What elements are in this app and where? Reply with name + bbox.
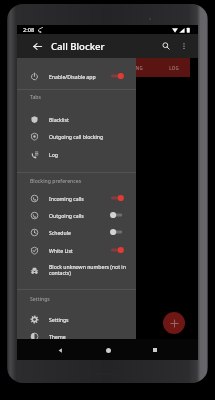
staticText: LOG [169,65,179,71]
button[interactable]: Recents [148,343,162,357]
staticText: White List [49,247,110,254]
button[interactable]: Home [101,343,115,357]
button[interactable]: More options [176,38,192,54]
button[interactable]: Settings [17,310,136,328]
button[interactable]: Back [53,343,67,357]
button[interactable]: Outgoing calls [17,206,136,224]
button[interactable]: OUTGOING [112,58,147,77]
staticText: Settings [49,316,130,323]
staticText: Tabs [30,94,42,101]
button[interactable]: Blacklist [17,110,136,128]
staticText: Blocking preferences [30,178,82,185]
button[interactable]: Block unknown numbers (not in contacts) [17,259,136,281]
button[interactable]: Incoming calls [17,189,136,207]
button[interactable]: BLACKLIST [22,58,72,77]
button[interactable]: LOG [157,58,190,77]
button[interactable]: Search [158,38,174,54]
button[interactable]: Add [163,312,185,334]
staticText: OUTGOING [117,65,143,71]
staticText: Enable/Disable app [49,73,110,80]
staticText: Schedule [49,229,110,236]
button[interactable]: White List [17,241,136,259]
staticText: Blacklist [49,116,130,123]
staticText: Outgoing calls [49,212,110,219]
button[interactable]: Log [17,145,136,163]
button[interactable]: Enable/Disable app [17,67,136,85]
button[interactable]: Back [29,38,45,54]
staticText: Call Blocker [51,40,105,53]
staticText: Settings [30,296,50,303]
staticText: Log [49,151,130,158]
staticText: Theme [49,333,130,340]
button[interactable]: Outgoing call blocking [17,127,136,145]
button[interactable]: Schedule [17,223,136,241]
button[interactable]: Theme [17,327,136,345]
staticText: Block unknown numbers (not in contacts) [49,263,132,277]
staticText: Outgoing call blocking [49,133,130,140]
staticText: 2:08 [23,26,35,34]
staticText: Incoming calls [49,195,110,202]
